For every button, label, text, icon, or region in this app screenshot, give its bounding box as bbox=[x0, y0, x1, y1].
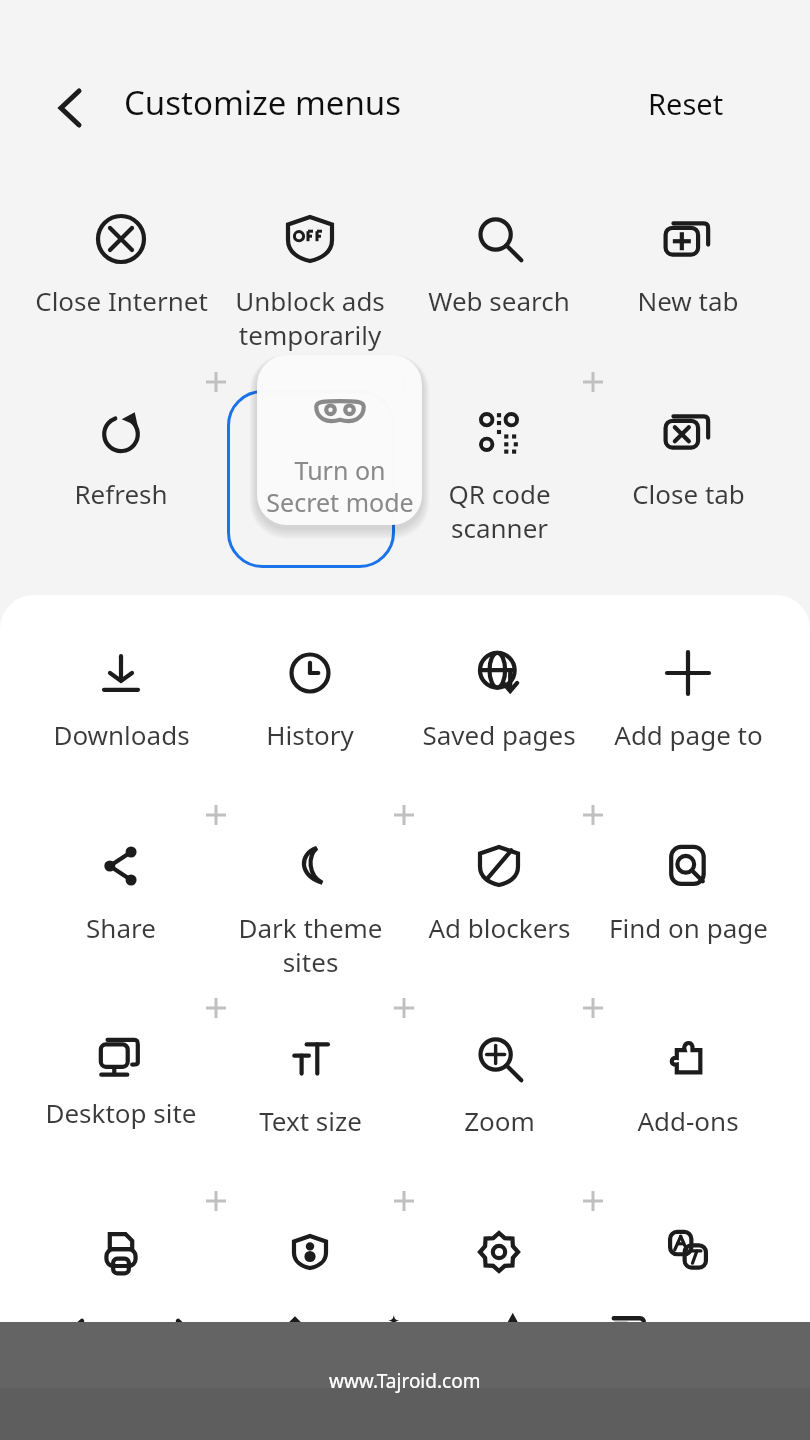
staticText: Desktop site bbox=[45, 1095, 197, 1130]
staticText: Downloads bbox=[53, 717, 190, 752]
staticText: Close Internet bbox=[35, 283, 208, 318]
staticText: QR code scanner bbox=[448, 476, 551, 545]
button[interactable]: Unblock ads temporarily bbox=[216, 211, 404, 352]
button[interactable]: Text size bbox=[216, 1031, 404, 1138]
staticText: Dark theme sites bbox=[238, 910, 383, 979]
button[interactable]: Bookmarks bbox=[460, 1278, 570, 1390]
staticText: Add page to bbox=[614, 717, 763, 752]
button[interactable] bbox=[405, 1224, 593, 1280]
staticText: Web search bbox=[428, 283, 570, 318]
button[interactable]: QR code scanner bbox=[405, 404, 593, 545]
staticText: Refresh bbox=[74, 476, 168, 511]
button[interactable] bbox=[27, 1224, 215, 1280]
button[interactable]: History bbox=[216, 645, 404, 752]
staticText: History bbox=[266, 717, 354, 752]
button[interactable] bbox=[216, 1224, 404, 1280]
staticText: Ad blockers bbox=[428, 910, 571, 945]
staticText: Find on page bbox=[609, 910, 768, 945]
button[interactable]: Tabs bbox=[570, 1278, 680, 1390]
button[interactable]: Downloads bbox=[27, 645, 215, 752]
button[interactable]: Back bbox=[20, 1278, 130, 1390]
button[interactable]: Home bbox=[240, 1278, 350, 1390]
button[interactable]: Zoom bbox=[405, 1031, 593, 1138]
button[interactable] bbox=[594, 1224, 782, 1280]
button[interactable]: Menu bbox=[680, 1278, 790, 1390]
button[interactable]: Reset bbox=[648, 84, 724, 123]
button[interactable]: Back bbox=[40, 78, 100, 138]
staticText: Close tab bbox=[632, 476, 745, 511]
button[interactable]: Refresh bbox=[27, 404, 215, 511]
staticText: Customize menus bbox=[124, 80, 402, 125]
button[interactable]: Turn on Secret mode bbox=[257, 355, 422, 525]
staticText: Text size bbox=[259, 1103, 362, 1138]
staticText: Saved pages bbox=[422, 717, 576, 752]
staticText: Add-ons bbox=[637, 1103, 739, 1138]
staticText: www.Tajroid.com bbox=[329, 1368, 481, 1394]
button[interactable]: Close Internet bbox=[27, 211, 215, 318]
button[interactable]: Add page to bbox=[594, 645, 782, 752]
button[interactable]: Assistant bbox=[350, 1278, 460, 1390]
staticText: Reset bbox=[648, 84, 724, 123]
button[interactable]: Saved pages bbox=[405, 645, 593, 752]
button[interactable]: Forward bbox=[130, 1278, 240, 1390]
button[interactable]: Add-ons bbox=[594, 1031, 782, 1138]
staticText: Turn on Secret mode bbox=[266, 453, 414, 519]
staticText: Share bbox=[86, 910, 156, 945]
button[interactable]: New tab bbox=[594, 211, 782, 318]
staticText: Unblock ads temporarily bbox=[235, 283, 385, 352]
button[interactable]: Find on page bbox=[594, 838, 782, 945]
button[interactable]: Dark theme sites bbox=[216, 838, 404, 979]
button[interactable]: Share bbox=[27, 838, 215, 945]
button[interactable]: Ad blockers bbox=[405, 838, 593, 945]
button[interactable]: Web search bbox=[405, 211, 593, 318]
staticText: New tab bbox=[637, 283, 739, 318]
staticText: Zoom bbox=[464, 1103, 535, 1138]
button[interactable]: Desktop site bbox=[27, 1031, 215, 1130]
button[interactable]: Close tab bbox=[594, 404, 782, 511]
